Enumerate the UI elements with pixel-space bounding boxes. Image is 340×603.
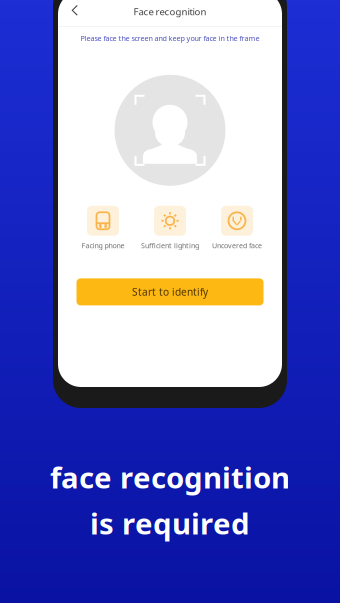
staticText: is required bbox=[90, 503, 250, 543]
button[interactable]: Back bbox=[64, 0, 85, 20]
staticText: Sufficient lighting bbox=[141, 241, 199, 250]
staticText: Please face the screen and keep your fac… bbox=[80, 33, 259, 43]
staticText: Start to identify bbox=[132, 285, 208, 299]
button[interactable]: Start to identify bbox=[76, 278, 263, 305]
staticText: Face recognition bbox=[133, 5, 206, 18]
staticText: Uncovered face bbox=[212, 241, 262, 250]
staticText: face recognition bbox=[50, 457, 290, 497]
staticText: Facing phone bbox=[81, 241, 124, 250]
